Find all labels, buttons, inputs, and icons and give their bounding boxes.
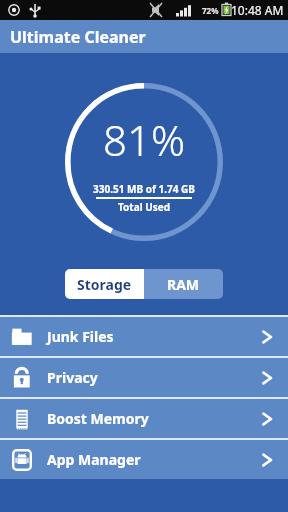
- staticText: Privacy: [47, 368, 258, 387]
- button[interactable]: Storage: [65, 269, 144, 299]
- staticText: Boost Memory: [47, 409, 258, 428]
- staticText: Ultimate Cleaner: [10, 26, 146, 48]
- button[interactable]: Boost Memory: [0, 399, 288, 438]
- staticText: 330.51 MB of 1.74 GB: [93, 182, 195, 196]
- staticText: RAM: [167, 275, 200, 294]
- other: Boost Memory: [11, 408, 33, 430]
- button[interactable]: RAM: [144, 269, 223, 299]
- other: Junk Files: [11, 326, 33, 348]
- staticText: Total Used: [118, 200, 171, 214]
- staticText: 72%: [202, 5, 219, 16]
- staticText: Storage: [77, 275, 132, 294]
- staticText: Junk Files: [47, 327, 258, 346]
- staticText: 10:48 AM: [231, 2, 284, 18]
- button[interactable]: App Manager: [0, 440, 288, 479]
- button[interactable]: Privacy: [0, 358, 288, 397]
- staticText: App Manager: [47, 450, 258, 469]
- other: Privacy: [11, 367, 33, 389]
- button[interactable]: Junk Files: [0, 317, 288, 356]
- button[interactable]: Ultimate Cleaner: [0, 20, 288, 53]
- other: App Manager: [11, 449, 33, 471]
- staticText: 81%: [103, 111, 186, 168]
